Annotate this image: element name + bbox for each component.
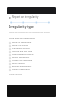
staticText: Overcrowded vehicle	[12, 53, 34, 56]
button[interactable]: Other irregularity	[7, 68, 56, 71]
button[interactable]: Cancelled service	[7, 47, 56, 50]
button[interactable]: Vehicle did not stop	[7, 50, 56, 53]
button[interactable]: Driver behaviour	[7, 56, 56, 59]
button[interactable]: Ticket not validated	[7, 59, 56, 62]
staticText: Cancelled service	[12, 47, 30, 50]
staticText: Dirty vehicle	[12, 62, 25, 65]
staticText: Delay at departure	[12, 41, 32, 44]
staticText: What kind of irregularity?	[9, 37, 36, 40]
button[interactable]: Delay on arrival	[7, 44, 56, 47]
button[interactable]: Back	[8, 16, 11, 19]
staticText: Vehicle did not stop	[12, 50, 33, 53]
button[interactable]: Broken equipment	[7, 65, 56, 68]
button[interactable]: Other reason	[9, 73, 23, 76]
staticText: Ticket not validated	[12, 59, 33, 62]
staticText: Irregularity type	[9, 25, 34, 29]
button[interactable]: Overcrowded vehicle	[7, 53, 56, 56]
staticText: Delay on arrival	[12, 44, 29, 47]
button[interactable]: Delay at departure	[7, 41, 56, 44]
staticText: Driver behaviour	[12, 56, 30, 59]
staticText: Other irregularity	[12, 68, 30, 71]
staticText: Report an irregularity	[12, 15, 39, 19]
staticText: Select the irregularity you experienced …	[9, 31, 50, 34]
button[interactable]: Dirty vehicle	[7, 62, 56, 65]
staticText: Broken equipment	[12, 65, 32, 68]
